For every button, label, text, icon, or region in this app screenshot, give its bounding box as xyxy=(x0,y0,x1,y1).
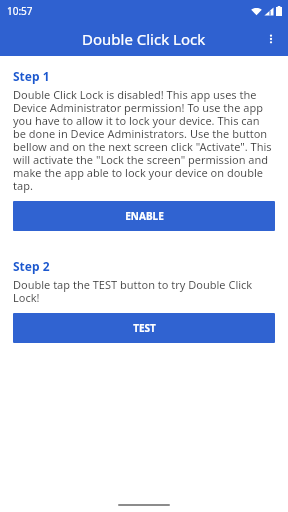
button[interactable]: ENABLE xyxy=(13,201,275,231)
staticText: Double Click Lock is disabled! This app … xyxy=(13,87,275,194)
staticText: TEST xyxy=(133,321,156,335)
staticText: ENABLE xyxy=(125,209,164,223)
staticText: Step 2 xyxy=(13,258,50,274)
staticText: 10:57 xyxy=(7,4,33,18)
button[interactable]: More options xyxy=(254,22,288,56)
staticText: Double tap the TEST button to try Double… xyxy=(13,277,275,306)
button[interactable]: TEST xyxy=(13,313,275,343)
staticText: Double Click Lock xyxy=(82,29,206,49)
staticText: Step 1 xyxy=(13,68,50,84)
